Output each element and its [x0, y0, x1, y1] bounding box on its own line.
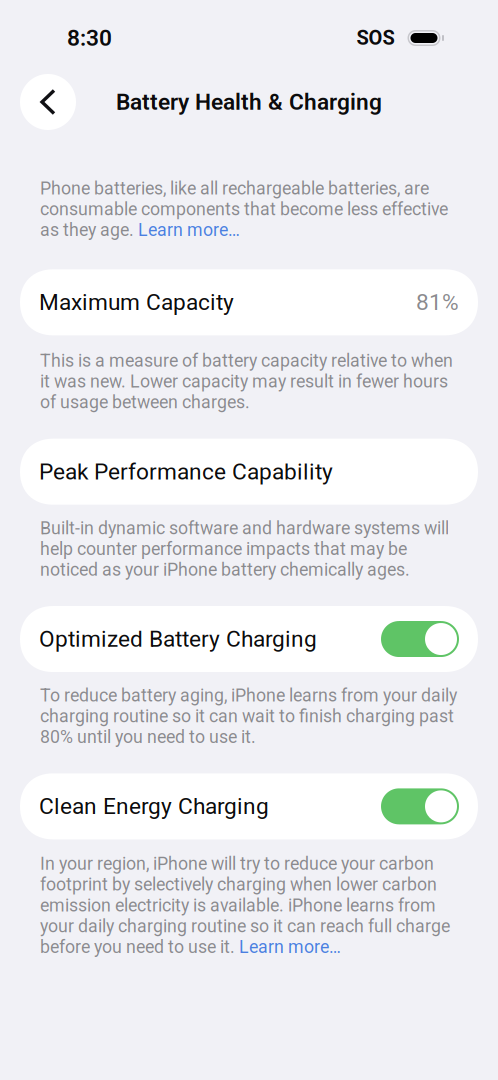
staticText: Optimized Battery Charging [39, 626, 317, 652]
staticText: 8:30 [67, 25, 112, 51]
staticText: 81% [416, 289, 459, 316]
staticText: Peak Performance Capability [39, 458, 333, 485]
button[interactable]: Optimized Battery Charging [20, 606, 478, 672]
button[interactable]: Peak Performance Capability [20, 439, 478, 505]
button[interactable]: Back [20, 74, 76, 130]
button[interactable]: Maximum Capacity [20, 269, 478, 335]
staticText: In your region, iPhone will try to reduc… [40, 853, 450, 957]
staticText: To reduce battery aging, iPhone learns f… [40, 685, 457, 747]
staticText: Clean Energy Charging [39, 793, 269, 820]
button[interactable]: Clean Energy Charging [20, 773, 478, 839]
staticText: SOS [356, 26, 394, 50]
staticText: Phone batteries, like all rechargeable b… [40, 178, 448, 240]
staticText: Maximum Capacity [39, 289, 234, 316]
staticText: Battery Health & Charging [116, 89, 382, 115]
staticText: Built-in dynamic software and hardware s… [40, 518, 449, 580]
staticText: This is a measure of battery capacity re… [40, 350, 453, 413]
